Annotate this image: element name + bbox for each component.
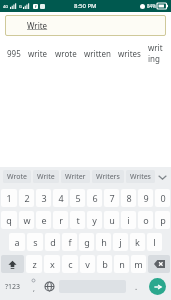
button[interactable]: c <box>62 255 78 273</box>
button[interactable]: w <box>19 211 34 229</box>
button[interactable]: write <box>28 48 48 59</box>
button[interactable]: writing <box>148 42 164 64</box>
button[interactable]: ?123 <box>0 275 25 298</box>
staticText: 6 <box>92 192 98 204</box>
button[interactable]: writes <box>118 48 141 59</box>
button[interactable]: 5 <box>70 189 85 207</box>
staticText: l <box>153 236 156 248</box>
staticText: o <box>143 214 149 226</box>
staticText: u <box>109 214 115 226</box>
button[interactable]: Comma <box>25 275 41 298</box>
button[interactable]: 6 <box>87 189 102 207</box>
staticText: x <box>50 258 55 270</box>
staticText: 5 <box>75 192 81 204</box>
button[interactable]: t <box>70 211 85 229</box>
staticText: 7 <box>109 192 115 204</box>
button[interactable]: j <box>113 233 128 251</box>
button[interactable]: 3 <box>36 189 51 207</box>
button[interactable]: 1 <box>1 189 17 207</box>
staticText: G <box>19 4 22 9</box>
button[interactable]: Write <box>5 15 166 36</box>
button[interactable]: d <box>45 233 60 251</box>
staticText: , <box>33 284 35 294</box>
button[interactable]: Write <box>33 170 59 183</box>
button[interactable]: g <box>79 233 94 251</box>
button[interactable]: 7 <box>104 189 119 207</box>
staticText: f <box>35 4 37 9</box>
staticText: y <box>92 214 97 226</box>
button[interactable]: m <box>131 255 146 273</box>
button[interactable]: Enter <box>149 278 166 295</box>
button[interactable]: x <box>44 255 60 273</box>
button[interactable]: b <box>97 255 112 273</box>
button[interactable]: Writers <box>92 170 124 183</box>
staticText: 8 <box>126 192 132 204</box>
button[interactable]: Wrote <box>3 170 31 183</box>
button[interactable]: 0 <box>155 189 170 207</box>
button[interactable]: Backspace <box>148 255 170 273</box>
button[interactable]: Writer <box>61 170 90 183</box>
button[interactable]: 9 <box>138 189 153 207</box>
button[interactable]: r <box>53 211 68 229</box>
button[interactable]: written <box>84 48 111 59</box>
staticText: 995 <box>7 48 21 59</box>
button[interactable]: e <box>36 211 51 229</box>
button[interactable]: 2 <box>19 189 34 207</box>
button[interactable]: a <box>9 233 25 251</box>
button[interactable]: f <box>62 233 77 251</box>
staticText: 2 <box>24 192 30 204</box>
staticText: ?123 <box>5 282 21 292</box>
staticText: d <box>50 236 56 248</box>
staticText: s <box>33 236 38 248</box>
button[interactable]: i <box>121 211 136 229</box>
staticText: a <box>14 236 20 248</box>
button[interactable]: h <box>96 233 111 251</box>
button[interactable]: s <box>27 233 43 251</box>
button[interactable]: 8 <box>121 189 136 207</box>
staticText: z <box>32 258 37 270</box>
button[interactable]: q <box>1 211 17 229</box>
staticText: Write <box>27 20 48 31</box>
staticText: Writes <box>130 172 151 182</box>
staticText: n <box>119 258 125 270</box>
button[interactable]: 4 <box>53 189 68 207</box>
staticText: k <box>135 236 140 248</box>
button[interactable]: n <box>114 255 129 273</box>
button[interactable]: o <box>138 211 153 229</box>
staticText: g <box>84 236 90 248</box>
button[interactable]: l <box>147 233 162 251</box>
staticText: e <box>41 214 47 226</box>
button[interactable]: k <box>130 233 145 251</box>
staticText: t <box>76 214 80 226</box>
button[interactable]: Shift <box>1 255 24 273</box>
button[interactable]: Change language <box>41 275 57 298</box>
button[interactable]: v <box>80 255 95 273</box>
staticText: r <box>59 214 63 226</box>
button[interactable]: y <box>87 211 102 229</box>
button[interactable]: Period <box>128 275 144 298</box>
staticText: Write <box>37 172 55 182</box>
staticText: i <box>127 214 130 226</box>
staticText: h <box>101 236 107 248</box>
staticText: 4 <box>58 192 64 204</box>
staticText: 3 <box>41 192 47 204</box>
staticText: 8:50 PM <box>74 2 97 10</box>
staticText: q <box>6 214 12 226</box>
button[interactable]: z <box>26 255 42 273</box>
staticText: Writers <box>96 172 120 182</box>
staticText: Wrote <box>7 172 27 182</box>
button[interactable]: u <box>104 211 119 229</box>
staticText: c <box>68 258 73 270</box>
button[interactable]: Writes <box>126 170 155 183</box>
staticText: 1 <box>6 192 12 204</box>
button[interactable]: wrote <box>55 48 77 59</box>
staticText: . <box>135 281 138 292</box>
button[interactable]: p <box>155 211 170 229</box>
button[interactable]: Expand suggestions <box>157 170 168 184</box>
staticText: b <box>102 258 108 270</box>
staticText: w <box>23 214 31 226</box>
staticText: m <box>134 258 143 270</box>
staticText: 84% <box>147 3 156 9</box>
staticText: 0 <box>160 192 166 204</box>
